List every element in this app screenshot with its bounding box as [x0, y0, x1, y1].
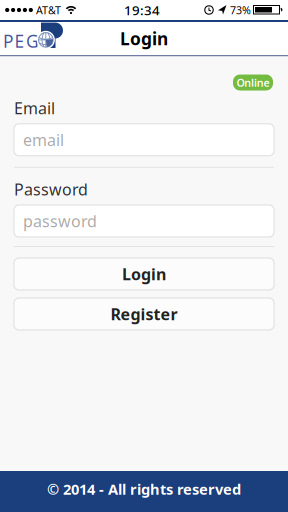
- staticText: password: [23, 210, 97, 232]
- button[interactable]: Login: [14, 258, 274, 290]
- staticText: Online: [236, 75, 269, 90]
- staticText: PEG: [3, 29, 39, 52]
- button[interactable]: Register: [14, 298, 274, 330]
- staticText: 19:34: [124, 1, 160, 19]
- staticText: Email: [14, 97, 55, 119]
- staticText: © 2014 - All rights reserved: [47, 479, 241, 499]
- staticText: Password: [14, 179, 88, 200]
- staticText: Login: [120, 27, 168, 50]
- staticText: Register: [110, 303, 177, 325]
- button[interactable]: email: [14, 124, 274, 156]
- staticText: 73%: [230, 3, 251, 17]
- staticText: email: [23, 129, 64, 150]
- button[interactable]: password: [14, 205, 274, 237]
- staticText: Login: [122, 263, 166, 285]
- staticText: AT&T: [36, 3, 61, 17]
